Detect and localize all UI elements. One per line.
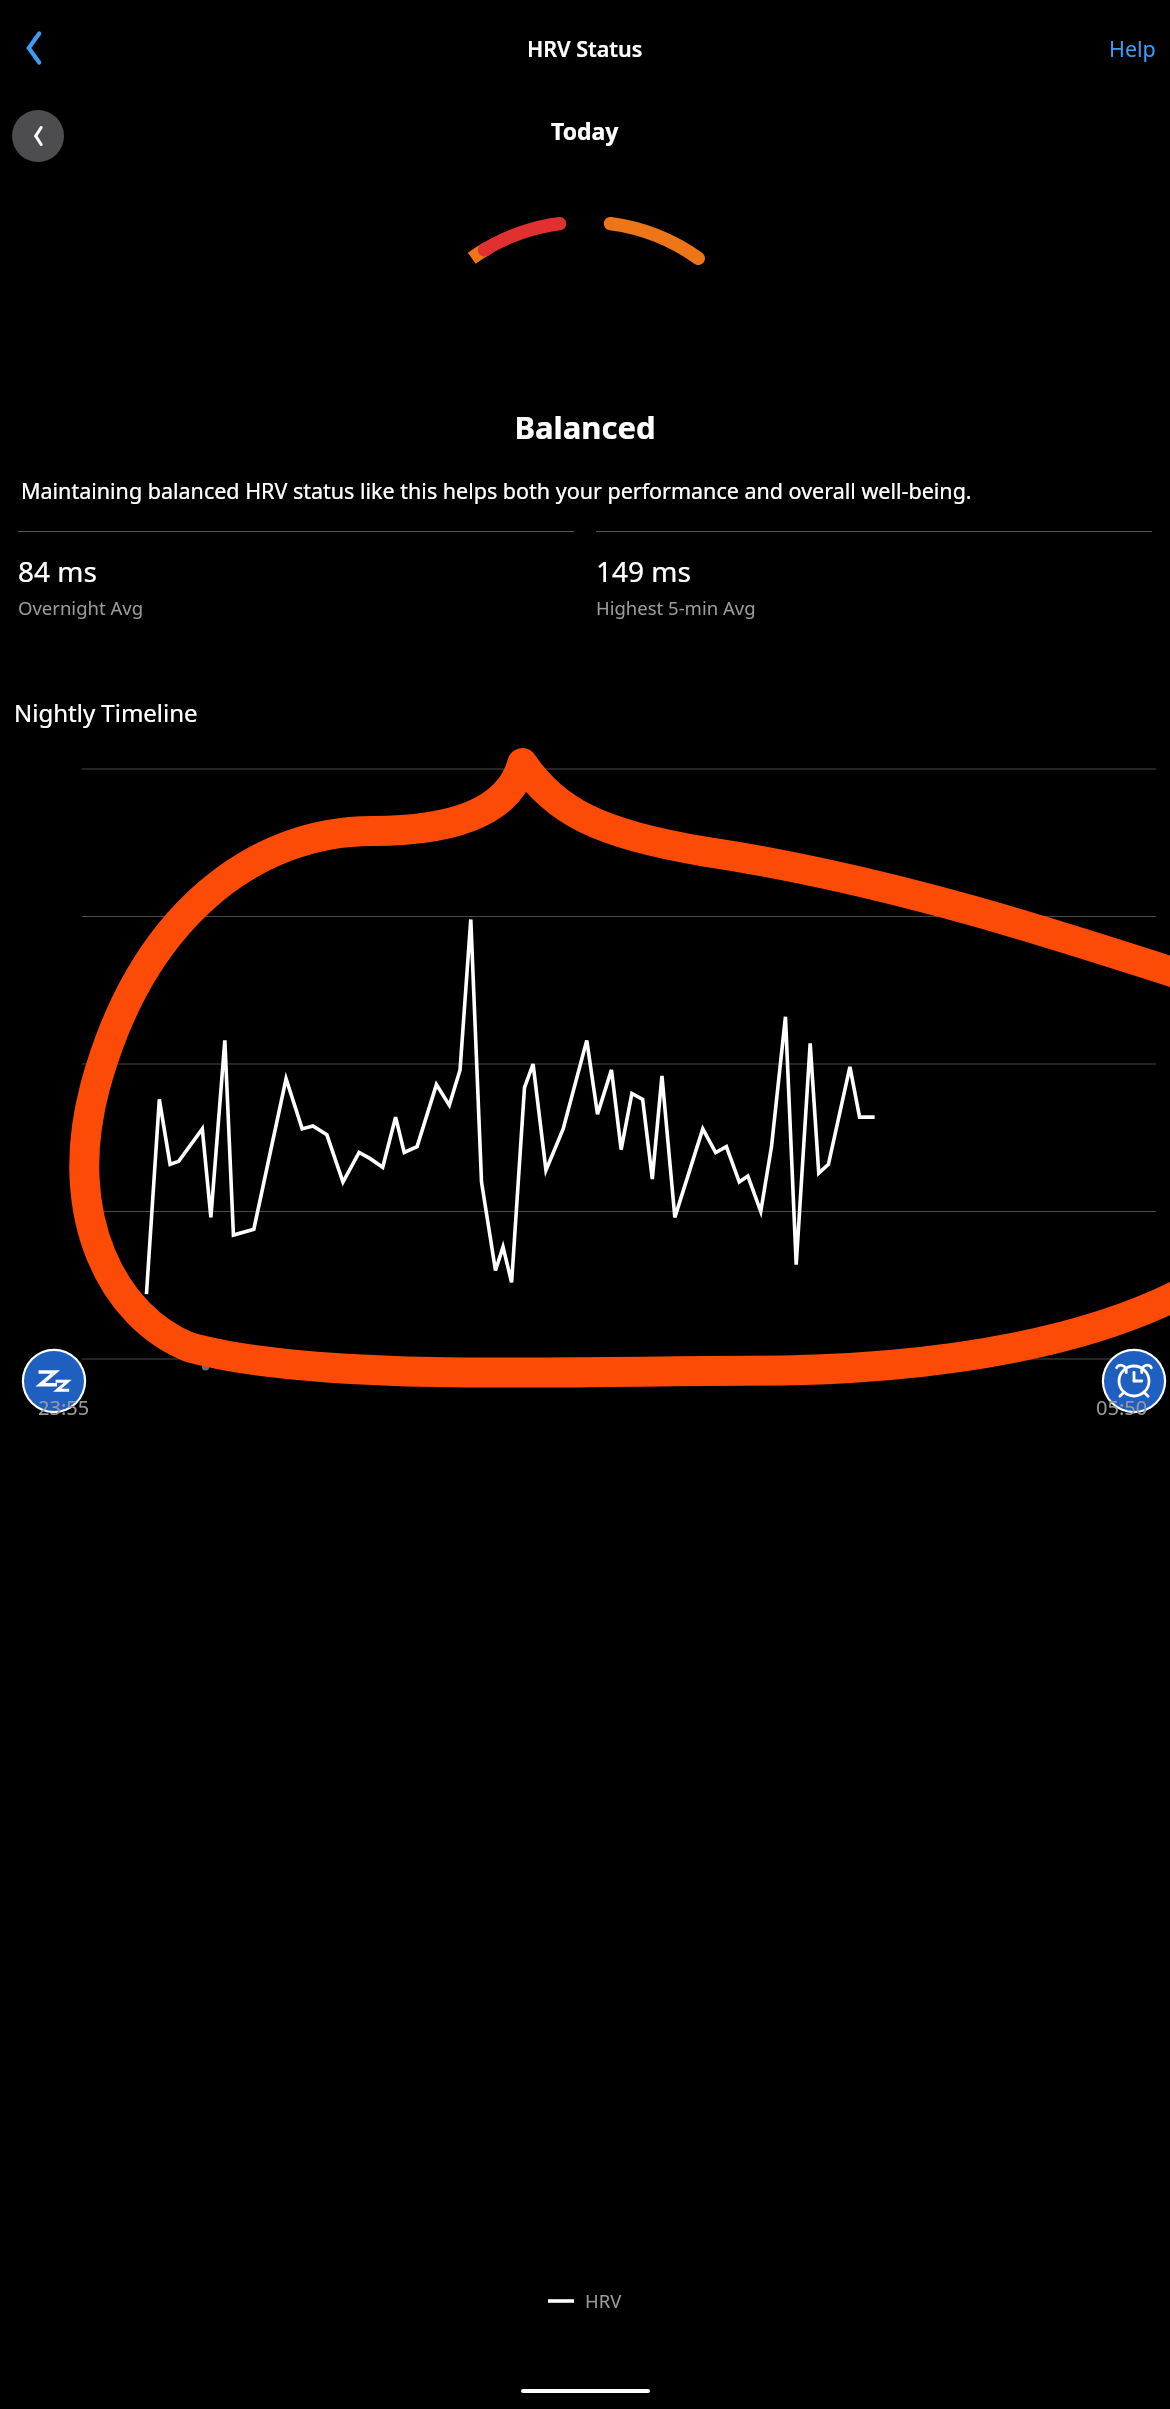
button[interactable]: Back <box>6 20 62 76</box>
staticText: Balanced <box>0 406 1170 448</box>
staticText: Today <box>551 115 619 146</box>
staticText: Help <box>1109 34 1156 63</box>
staticText: 05:50 <box>1096 1394 1148 1421</box>
staticText: 23:55 <box>38 1394 90 1421</box>
staticText: Overnight Avg <box>18 595 144 620</box>
button[interactable]: Help <box>1095 26 1170 71</box>
staticText: 149 ms <box>596 552 691 590</box>
staticText: HRV Status <box>527 34 643 63</box>
button[interactable]: Previous day <box>12 110 64 162</box>
staticText: Nightly Timeline <box>14 696 198 729</box>
staticText: HRV <box>585 2288 622 2313</box>
staticText: Highest 5-min Avg <box>596 595 756 620</box>
staticText: Maintaining balanced HRV status like thi… <box>21 476 1149 505</box>
staticText: 84 ms <box>18 552 97 590</box>
